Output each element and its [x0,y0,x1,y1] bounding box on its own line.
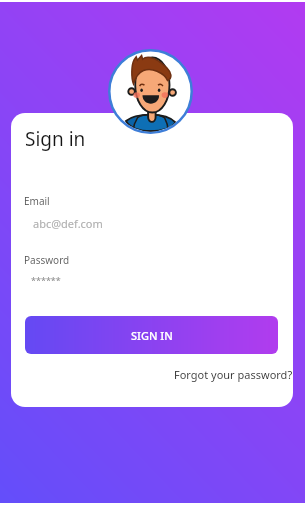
staticText: abc@def.com [33,216,103,231]
staticText: Forgot your password? [174,367,293,382]
staticText: SIGN IN [131,328,173,343]
other: User avatar [108,49,193,134]
staticText: ****** [31,274,61,286]
staticText: Email [24,194,50,208]
button[interactable]: SIGN IN [25,316,278,354]
staticText: Sign in [25,126,86,152]
staticText: Password [24,253,70,267]
button[interactable]: Forgot your password? [174,367,293,382]
